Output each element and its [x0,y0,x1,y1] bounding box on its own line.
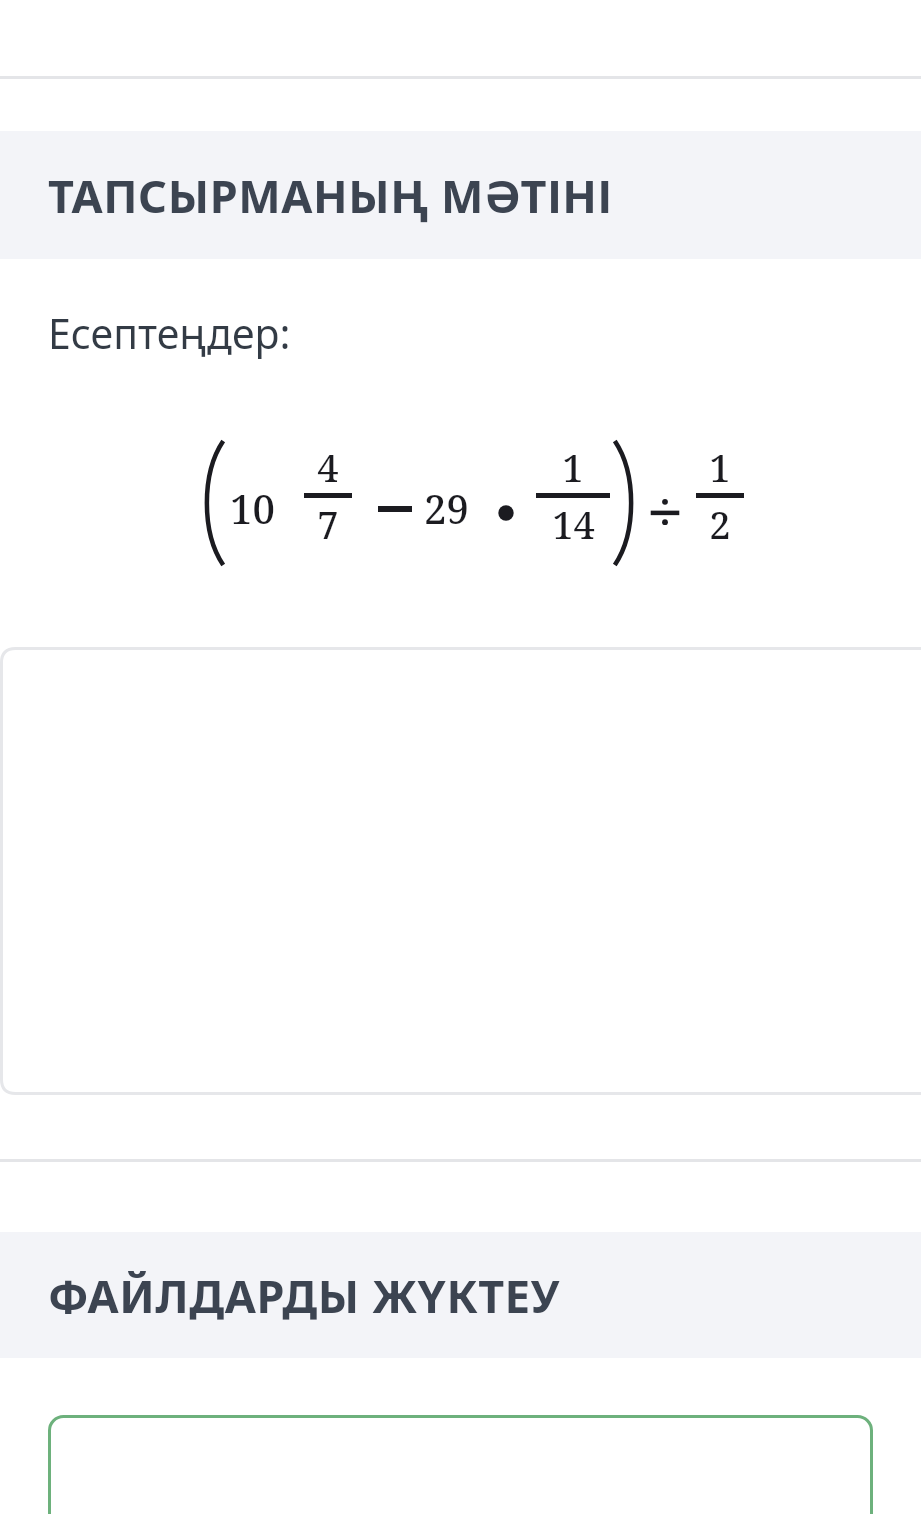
staticText: 14 [552,498,595,550]
staticText: 10 [230,481,275,535]
staticText: 1 [709,441,731,493]
button[interactable]: ФАЙЛДАРДЫ ЖҮКТЕУ [0,1232,921,1358]
button[interactable]: Файлдарды жүктеу [48,1415,873,1514]
button[interactable]: ТАПСЫРМАНЫҢ МӘТІНІ [0,131,921,259]
staticText: 7 [317,498,339,550]
staticText: 4 [317,441,339,493]
staticText: Есептеңдер: [48,305,291,361]
staticText: 2 [709,498,731,550]
staticText: 1 [562,441,584,493]
button[interactable] [0,647,921,1095]
staticText: ТАПСЫРМАНЫҢ МӘТІНІ [48,165,613,226]
staticText: ФАЙЛДАРДЫ ЖҮКТЕУ [48,1265,561,1326]
staticText: 29 [424,481,469,535]
